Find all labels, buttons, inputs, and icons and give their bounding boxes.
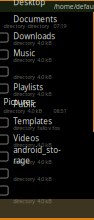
button[interactable]: android_storage bbox=[0, 182, 94, 199]
staticText: 4.0 kB bbox=[37, 158, 51, 165]
staticText: 4.0 kB bbox=[37, 175, 51, 182]
button[interactable]: Playlists bbox=[0, 114, 94, 131]
staticText: fallo v fos bbox=[37, 124, 60, 131]
staticText: directory bbox=[13, 124, 35, 131]
staticText: Public bbox=[13, 99, 36, 109]
staticText: directory bbox=[13, 39, 35, 46]
button[interactable]: ^ bbox=[0, 12, 94, 29]
staticText: directory bbox=[27, 22, 49, 29]
button[interactable]: Videos bbox=[0, 165, 94, 182]
staticText: Pictures bbox=[3, 97, 34, 107]
staticText: directory bbox=[13, 158, 35, 165]
staticText: directory bbox=[13, 175, 35, 182]
staticText: 4.0 kB bbox=[37, 56, 51, 63]
staticText: Templates bbox=[13, 116, 52, 126]
staticText: Desktop bbox=[13, 0, 45, 7]
staticText: 4.0 kB bbox=[37, 198, 51, 205]
staticText: Downloads bbox=[13, 31, 55, 41]
staticText: directory bbox=[3, 107, 25, 114]
staticText: directory bbox=[3, 22, 25, 29]
staticText: 4.0 kB bbox=[37, 73, 51, 80]
button[interactable]: Desktop bbox=[0, 29, 94, 46]
staticText: android_storage bbox=[13, 144, 61, 166]
button[interactable]: Music bbox=[0, 80, 94, 97]
staticText: 4.0 kB bbox=[37, 39, 51, 46]
staticText: Videos bbox=[13, 133, 39, 143]
button[interactable]: Pictures bbox=[0, 97, 94, 114]
staticText: Documents bbox=[13, 14, 57, 24]
staticText: Music bbox=[13, 48, 35, 58]
button[interactable]: Public bbox=[0, 131, 94, 148]
button[interactable]: Templates bbox=[0, 148, 94, 165]
staticText: directory bbox=[13, 90, 35, 97]
staticText: directory bbox=[13, 73, 35, 80]
staticText: Playlists bbox=[13, 82, 43, 92]
staticText: 4.0 kB bbox=[37, 90, 51, 97]
staticText: directory bbox=[13, 141, 35, 148]
staticText: 4.0 kB bbox=[37, 141, 51, 148]
staticText: 08:51 bbox=[53, 107, 66, 114]
staticText: directory bbox=[13, 56, 35, 63]
button[interactable]: Documents bbox=[0, 46, 94, 63]
staticText: 4.0 kB bbox=[27, 107, 41, 114]
button[interactable]: Downloads bbox=[0, 63, 94, 80]
staticText: 07:19 bbox=[53, 22, 66, 29]
staticText: /home/defaultuser bbox=[54, 2, 94, 11]
staticText: directory bbox=[13, 198, 35, 205]
